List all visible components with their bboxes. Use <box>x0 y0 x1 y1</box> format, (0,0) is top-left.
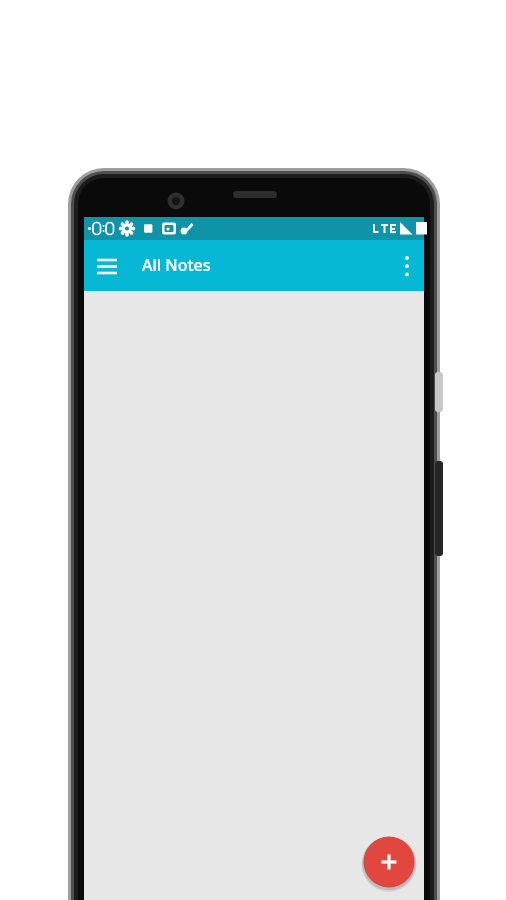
button[interactable]: Add note <box>363 836 415 888</box>
staticText: All Notes <box>142 254 211 276</box>
button[interactable]: Open navigation drawer <box>89 248 125 284</box>
button[interactable]: More options <box>390 248 424 282</box>
